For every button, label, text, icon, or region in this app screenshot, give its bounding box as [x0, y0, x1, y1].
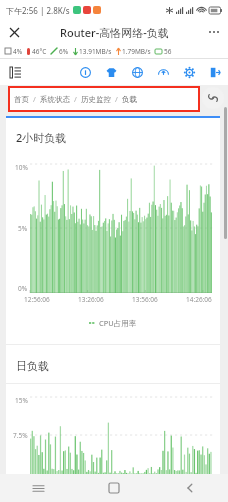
staticText: / — [70, 94, 81, 104]
staticText: 日负载 — [16, 359, 49, 373]
button[interactable]: Link — [202, 87, 224, 109]
staticText: 56 — [164, 47, 172, 56]
staticText: Router-高恪网络-负载 — [60, 25, 169, 40]
staticText: 14:26:06 — [186, 295, 212, 304]
staticText: 12:56:06 — [24, 295, 50, 304]
staticText: 46°C — [32, 47, 47, 56]
staticText: 13:26:06 — [78, 295, 104, 304]
staticText: 系统状态 — [40, 95, 70, 104]
staticText: 7.5% — [13, 431, 28, 440]
staticText: 13.91MB/s — [79, 47, 112, 56]
button[interactable]: More options — [204, 22, 224, 42]
button[interactable]: Theme — [103, 64, 119, 80]
staticText: 5% — [18, 224, 28, 233]
staticText: / — [111, 94, 122, 104]
staticText: 13:56:06 — [132, 295, 158, 304]
staticText: / — [29, 94, 40, 104]
staticText: CPU占用率 — [99, 318, 137, 328]
button[interactable]: 首页 — [8, 86, 200, 112]
button[interactable]: Info — [77, 64, 93, 80]
button[interactable]: Menu — [6, 63, 24, 81]
staticText: 2小时负载 — [16, 130, 67, 145]
button[interactable]: Close — [4, 22, 24, 42]
button[interactable]: Network — [129, 64, 145, 80]
staticText: 15% — [15, 396, 28, 405]
button[interactable]: Recents — [0, 474, 76, 502]
staticText: 负载 — [122, 95, 137, 104]
staticText: 首页 — [14, 95, 29, 104]
staticText: 1.79MB/s — [122, 47, 151, 56]
button[interactable]: Home — [76, 474, 152, 502]
button[interactable]: Settings — [181, 64, 197, 80]
staticText: 4% — [13, 47, 23, 56]
staticText: 6% — [59, 47, 69, 56]
staticText: 10% — [15, 163, 28, 172]
staticText: 历史监控 — [81, 95, 111, 104]
staticText: 下午2:56 | 2.8K/s — [6, 5, 70, 16]
button[interactable]: Logout — [207, 64, 223, 80]
button[interactable]: Back — [152, 474, 228, 502]
staticText: 0% — [18, 284, 28, 293]
button[interactable]: Cloud — [155, 64, 171, 80]
